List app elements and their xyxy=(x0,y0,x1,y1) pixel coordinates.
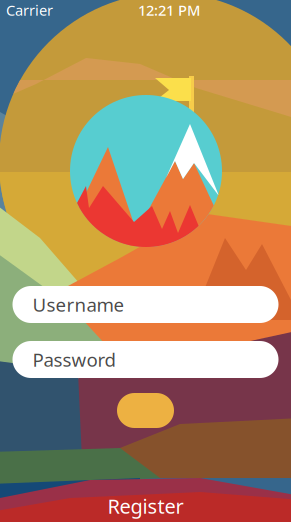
staticText: Register xyxy=(107,493,183,519)
button[interactable]: Sign in xyxy=(117,393,174,428)
button[interactable]: Register xyxy=(0,490,291,522)
staticText: Password xyxy=(32,347,115,372)
staticText: Carrier xyxy=(6,0,53,20)
staticText: Username xyxy=(32,292,124,317)
staticText: 12:21 PM xyxy=(138,0,200,20)
